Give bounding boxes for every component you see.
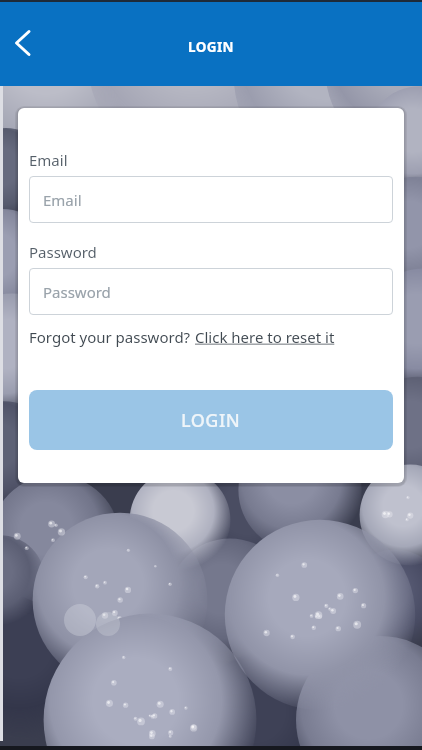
button[interactable] <box>0 21 44 65</box>
button[interactable]: Password <box>29 268 393 315</box>
staticText: LOGIN <box>181 408 241 433</box>
staticText: Password <box>43 282 111 302</box>
staticText: Email <box>29 150 68 170</box>
button[interactable]: Click here to reset it <box>195 327 335 347</box>
staticText: Email <box>43 190 82 210</box>
staticText: LOGIN <box>188 38 234 56</box>
staticText: Password <box>29 242 97 262</box>
button[interactable]: LOGIN <box>29 390 393 450</box>
staticText: Forgot your password? <box>29 327 195 347</box>
button[interactable]: Email <box>29 176 393 223</box>
